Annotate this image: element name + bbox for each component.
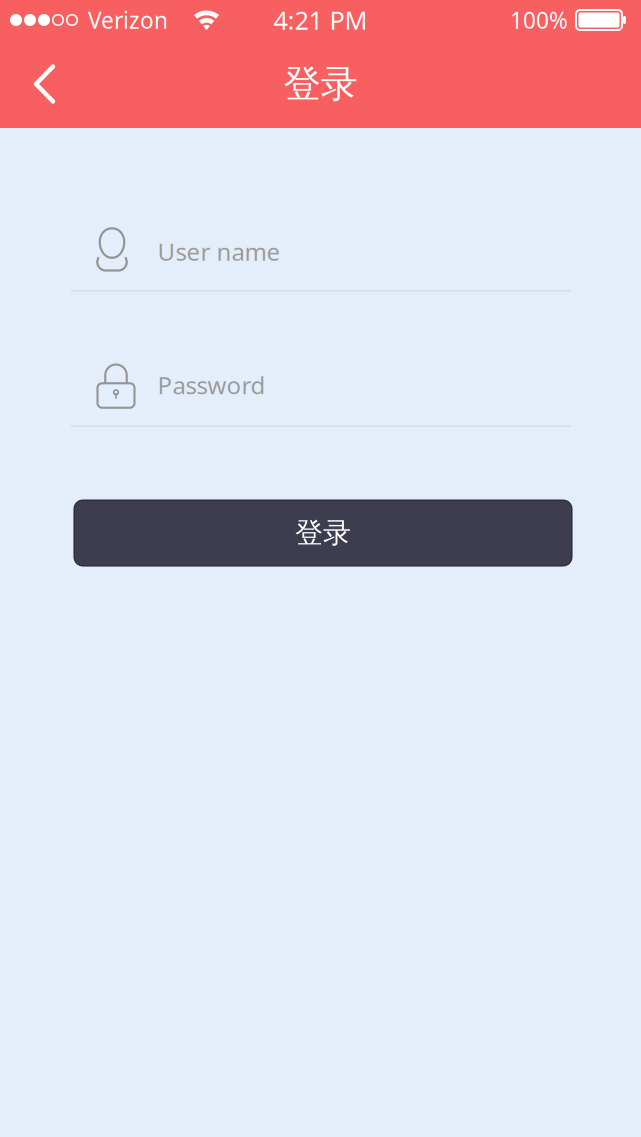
- staticText: Verizon: [88, 5, 168, 35]
- staticText: User name: [157, 236, 280, 267]
- staticText: 登录: [295, 516, 351, 550]
- staticText: 4:21 PM: [273, 3, 367, 37]
- staticText: Password: [157, 369, 265, 401]
- button[interactable]: User name: [70, 227, 570, 291]
- button[interactable]: 登录: [74, 500, 572, 566]
- button[interactable]: Password: [70, 362, 570, 427]
- staticText: 登录: [283, 61, 357, 107]
- button[interactable]: Back: [0, 49, 79, 118]
- staticText: 100%: [510, 5, 568, 35]
